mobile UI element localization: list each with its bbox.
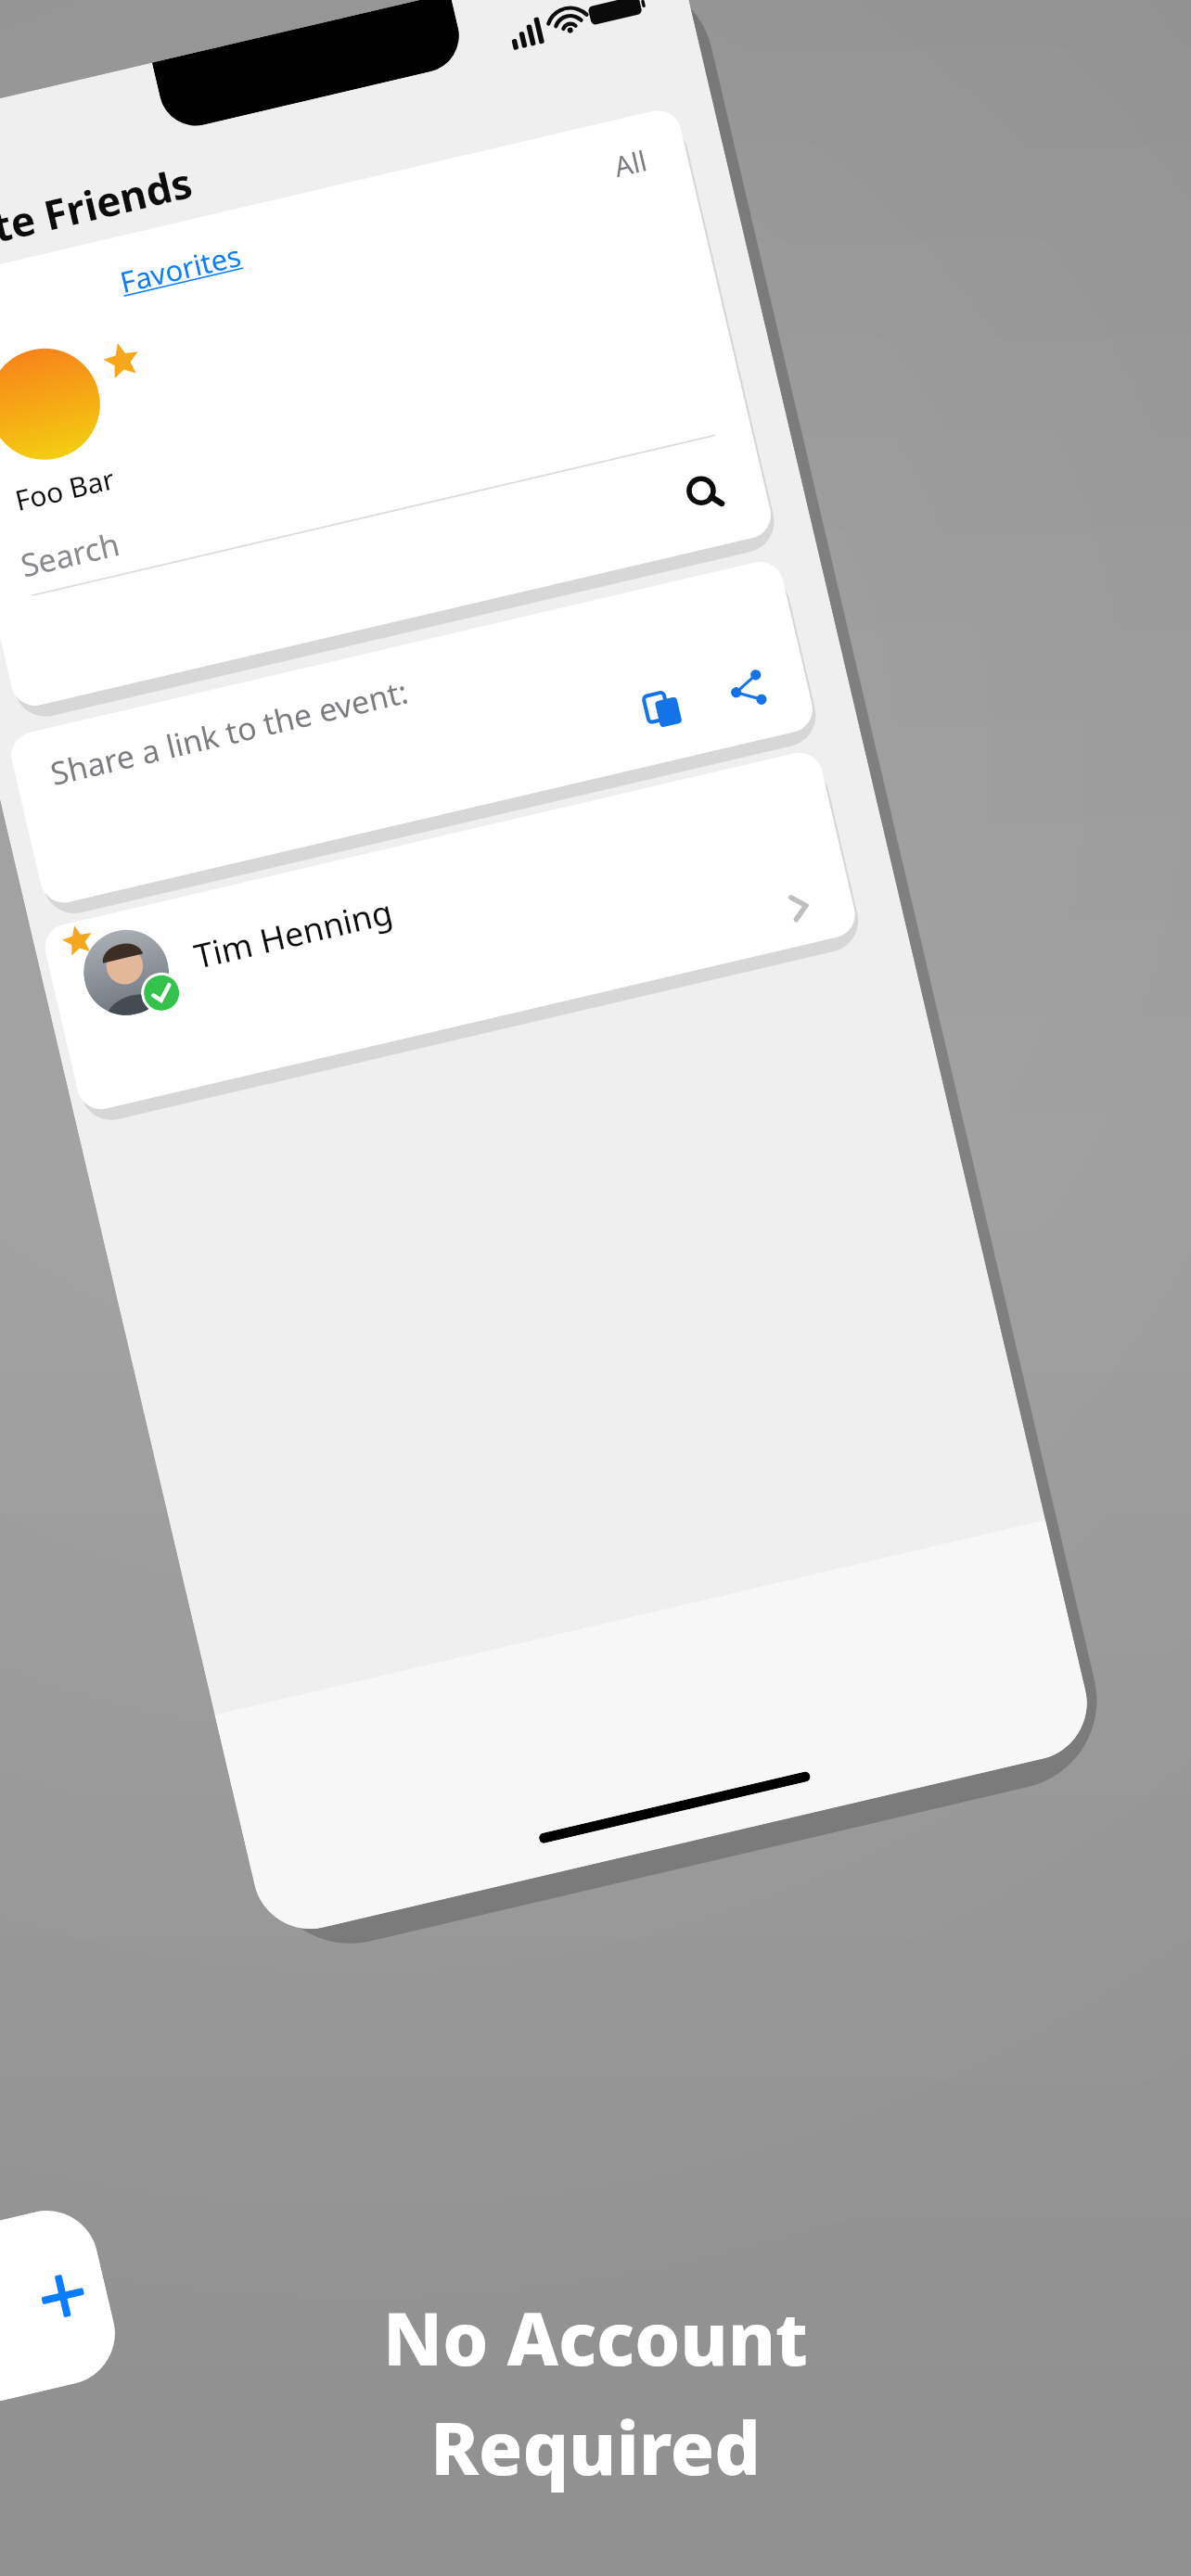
button[interactable]: Tim Henning (40, 748, 860, 1114)
button[interactable]: Share (714, 656, 781, 723)
staticText: Foo Bar (11, 459, 118, 519)
staticText: Favorites (116, 235, 245, 301)
button[interactable]: Foo Bar (0, 322, 174, 525)
staticText: All (610, 141, 651, 186)
staticText: Search (16, 522, 124, 586)
button[interactable]: Search (16, 383, 719, 597)
staticText: Tim Henning (190, 889, 397, 979)
button[interactable]: Add (0, 2200, 125, 2412)
button[interactable]: Search (672, 461, 737, 525)
staticText: Invite Friends (0, 154, 197, 272)
button[interactable]: All (603, 138, 658, 189)
staticText: Required (430, 2398, 761, 2496)
staticText: No Account (383, 2289, 808, 2387)
staticText: Share a link to the event: (46, 670, 412, 795)
button[interactable]: Copy link (629, 676, 696, 743)
button[interactable]: Favorites (110, 232, 251, 304)
